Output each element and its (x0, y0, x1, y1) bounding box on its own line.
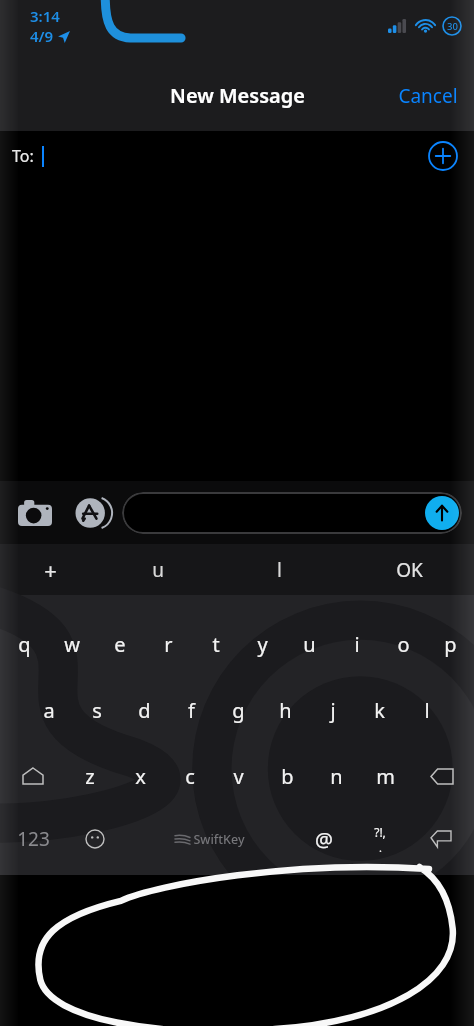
staticText: 30 (447, 20, 458, 33)
button[interactable]: r (144, 617, 192, 671)
button[interactable]: s (73, 683, 121, 737)
staticText: v (233, 763, 244, 790)
staticText: e (114, 631, 126, 658)
button[interactable]: c (165, 749, 214, 803)
button[interactable]: k (356, 683, 403, 737)
staticText: q (18, 631, 31, 658)
button[interactable]: n (312, 749, 361, 803)
staticText: l (277, 557, 282, 583)
staticText: OK (396, 557, 423, 583)
button[interactable]: j (309, 683, 356, 737)
button[interactable]: Camera (12, 490, 58, 536)
button[interactable]: Shift (0, 749, 65, 803)
staticText: To: (12, 145, 34, 167)
staticText: 4/9 (30, 26, 54, 46)
button[interactable]: + (0, 544, 101, 595)
button[interactable]: z (65, 749, 115, 803)
button[interactable]: a (25, 683, 73, 737)
staticText: f (188, 697, 195, 724)
staticText: Cancel (398, 83, 458, 109)
button[interactable]: l (403, 683, 450, 737)
staticText: a (43, 697, 55, 724)
button[interactable]: Cancel (382, 73, 474, 119)
button[interactable]: To: (0, 131, 474, 189)
staticText: p (444, 631, 457, 658)
staticText: g (232, 697, 245, 724)
button[interactable]: y (239, 617, 286, 671)
button[interactable]: b (263, 749, 312, 803)
staticText: . (379, 840, 382, 855)
button[interactable]: Add contact (428, 141, 458, 171)
staticText: c (185, 763, 195, 790)
button[interactable]: App Store (68, 490, 114, 536)
button[interactable]: Send (122, 492, 462, 534)
button[interactable]: q (0, 617, 48, 671)
button[interactable]: l (214, 544, 344, 595)
staticText: m (376, 763, 395, 790)
staticText: 123 (17, 826, 50, 852)
button[interactable]: t (192, 617, 239, 671)
button[interactable]: p (427, 617, 474, 671)
button[interactable]: OK (344, 544, 474, 595)
staticText: New Message (170, 82, 305, 109)
staticText: z (85, 763, 95, 790)
button[interactable]: ?!, (352, 813, 408, 865)
staticText: + (44, 555, 57, 585)
staticText: w (64, 631, 80, 658)
button[interactable]: 123 (0, 813, 67, 865)
staticText: r (164, 631, 173, 658)
button[interactable]: SwiftKey (123, 813, 296, 865)
button[interactable]: x (115, 749, 165, 803)
staticText: d (138, 697, 151, 724)
staticText: ?!, (374, 824, 386, 840)
button[interactable]: Emoji (67, 813, 123, 865)
staticText: k (374, 697, 385, 724)
staticText: x (135, 763, 146, 790)
button[interactable]: f (168, 683, 215, 737)
staticText: u (152, 557, 164, 583)
button[interactable]: @ (296, 813, 352, 865)
staticText: s (92, 697, 102, 724)
staticText: y (257, 631, 268, 658)
staticText: l (424, 697, 430, 724)
button[interactable]: m (361, 749, 410, 803)
staticText: SwiftKey (193, 831, 245, 848)
button[interactable]: e (96, 617, 144, 671)
button[interactable]: u (101, 544, 214, 595)
button[interactable]: Enter (408, 813, 474, 865)
button[interactable]: Backspace (410, 749, 474, 803)
button[interactable]: d (121, 683, 168, 737)
button[interactable]: g (215, 683, 262, 737)
staticText: t (212, 631, 220, 658)
staticText: j (330, 697, 336, 724)
staticText: @ (315, 826, 333, 853)
button[interactable]: u (286, 617, 333, 671)
staticText: o (397, 631, 410, 658)
button[interactable]: o (380, 617, 427, 671)
button[interactable]: v (214, 749, 263, 803)
button[interactable]: w (48, 617, 96, 671)
staticText: i (354, 631, 360, 658)
staticText: 3:14 (30, 6, 60, 26)
staticText: u (303, 631, 316, 658)
staticText: b (281, 763, 294, 790)
button[interactable]: i (333, 617, 380, 671)
button[interactable]: h (262, 683, 309, 737)
staticText: n (330, 763, 343, 790)
button[interactable]: Send (425, 496, 459, 530)
staticText: h (279, 697, 292, 724)
